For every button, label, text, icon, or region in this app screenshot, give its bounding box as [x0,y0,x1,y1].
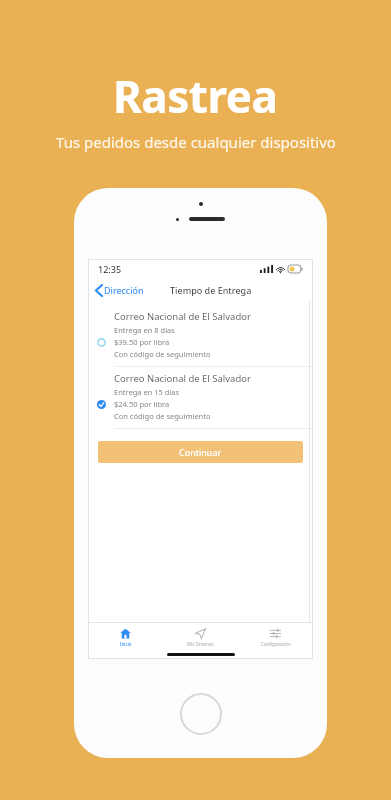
button[interactable]: Correo Nacional de El Salvador [88,305,313,366]
button[interactable]: Mis Ordenes [163,623,238,651]
staticText: Entrega en 8 días [114,325,175,335]
staticText: Tiempo de Entrega [170,284,252,296]
staticText: $24.50 por libra [114,399,170,409]
staticText: Correo Nacional de El Salvador [114,310,251,323]
staticText: Correo Nacional de El Salvador [114,372,251,385]
staticText: Con código de seguimiento [114,411,211,421]
staticText: 12:35 [98,263,122,275]
button[interactable]: Configuración [238,623,313,651]
button[interactable]: Continuar [98,441,303,463]
button[interactable]: Correo Nacional de El Salvador [88,367,313,428]
staticText: Entrega en 15 días [114,387,180,397]
button[interactable]: Inicio [88,623,163,651]
staticText: Configuración [261,641,291,647]
staticText: Inicio [120,641,132,647]
staticText: Mis Ordenes [187,641,214,647]
staticText: $39.50 por libra [114,337,170,347]
button[interactable]: Dirección [96,284,144,296]
staticText: Dirección [104,284,144,296]
staticText: Rastrea [113,66,278,126]
staticText: Continuar [179,446,222,458]
staticText: Tus pedidos desde cualquier dispositivo [56,132,336,152]
staticText: Con código de seguimiento [114,349,211,359]
